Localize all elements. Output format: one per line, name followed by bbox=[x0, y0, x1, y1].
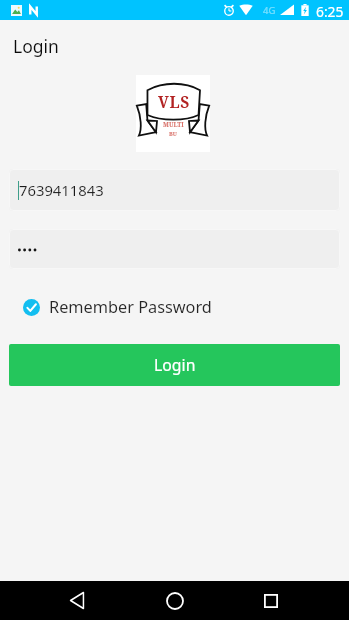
button[interactable]: Recent apps bbox=[251, 581, 291, 620]
staticText: 6:25 bbox=[316, 2, 344, 21]
staticText: 7639411843 bbox=[19, 180, 104, 200]
button[interactable]: 7639411843 bbox=[9, 169, 340, 211]
staticText: MULTI bbox=[163, 120, 184, 128]
staticText: Login bbox=[154, 354, 196, 376]
button[interactable]: Back bbox=[57, 581, 97, 620]
staticText: VLS bbox=[158, 91, 190, 112]
button[interactable] bbox=[9, 229, 340, 269]
button[interactable]: Login bbox=[9, 344, 340, 386]
button[interactable]: Remember Password bbox=[23, 291, 212, 323]
staticText: Remember Password bbox=[49, 296, 212, 318]
staticText: BU bbox=[169, 130, 177, 137]
staticText: 4G bbox=[263, 4, 276, 17]
staticText: Login bbox=[13, 34, 59, 58]
button[interactable]: Home bbox=[155, 581, 195, 620]
